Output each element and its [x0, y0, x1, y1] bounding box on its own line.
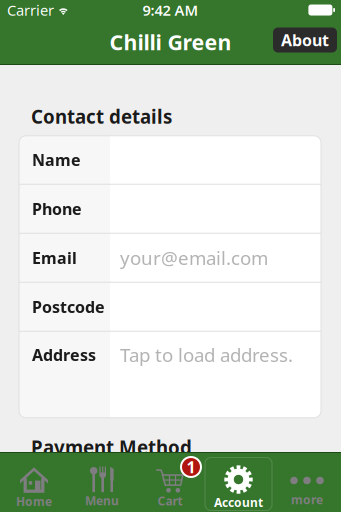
button[interactable]: Cart [136, 452, 204, 512]
staticText: more [291, 492, 323, 507]
staticText: Home [16, 493, 52, 509]
staticText: Carrier [7, 0, 54, 20]
staticText: Contact details [31, 104, 172, 129]
staticText: Postcode [32, 296, 105, 317]
staticText: 1 [186, 456, 195, 478]
staticText: Menu [85, 492, 119, 508]
staticText: Name [32, 149, 81, 170]
staticText: Chilli Green [109, 28, 231, 56]
button[interactable]: Menu [68, 452, 136, 512]
staticText: Cart [157, 493, 182, 509]
staticText: Address [32, 344, 96, 365]
staticText: Account [214, 494, 263, 510]
staticText: Email [32, 247, 77, 268]
staticText: Phone [32, 198, 82, 219]
staticText: About [281, 29, 329, 51]
button[interactable]: Account [204, 452, 273, 512]
staticText: 9:42 AM [142, 0, 198, 20]
button[interactable]: more [273, 452, 341, 512]
staticText: Payment Method [31, 435, 192, 460]
button[interactable]: Home [0, 452, 68, 512]
staticText: Tap to load address. [120, 342, 293, 367]
button[interactable]: About [273, 27, 337, 52]
staticText: your@email.com [120, 245, 268, 270]
